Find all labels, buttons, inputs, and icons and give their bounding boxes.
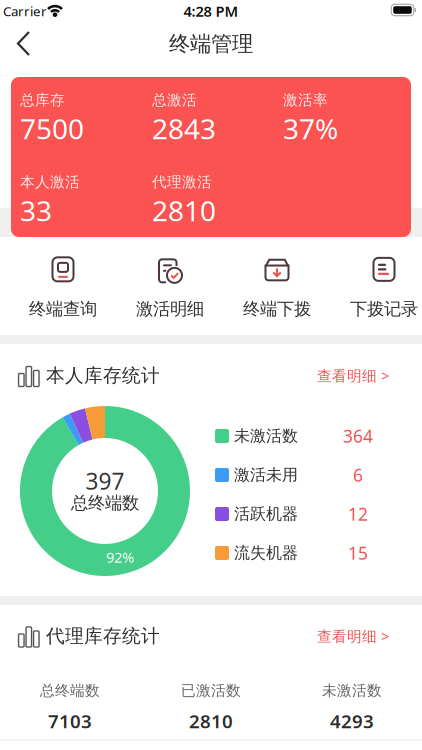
staticText: Carrier — [3, 2, 47, 20]
staticText: 未激活数 — [234, 426, 298, 446]
staticText: 总终端数 — [40, 682, 100, 700]
staticText: 总激活 — [152, 91, 197, 109]
staticText: 本人库存统计 — [46, 364, 160, 387]
staticText: 本人激活 — [20, 173, 80, 191]
staticText: 92% — [106, 547, 134, 567]
staticText: 2810 — [152, 192, 216, 229]
staticText: 代理激活 — [152, 173, 212, 191]
staticText: 总库存 — [20, 91, 65, 109]
staticText: 查看明细 > — [317, 366, 389, 385]
staticText: 激活明细 — [136, 298, 204, 320]
staticText: 2843 — [152, 110, 216, 147]
staticText: 33 — [20, 192, 52, 229]
staticText: 终端查询 — [29, 298, 97, 320]
staticText: 总终端数 — [71, 492, 139, 514]
staticText: 15 — [348, 541, 368, 564]
staticText: 12 — [348, 502, 368, 525]
staticText: 37% — [283, 110, 338, 147]
button[interactable]: 查看明细 > — [269, 366, 389, 385]
staticText: 流失机器 — [234, 543, 298, 563]
staticText: 7500 — [20, 110, 84, 147]
staticText: 4:28 PM — [183, 1, 238, 21]
staticText: 查看明细 > — [317, 626, 389, 646]
button[interactable]: 终端下拨 — [243, 254, 311, 320]
button[interactable]: 激活明细 — [136, 254, 204, 320]
button[interactable]: 终端查询 — [29, 254, 97, 320]
staticText: 终端下拨 — [243, 298, 311, 320]
staticText: 6 — [353, 463, 363, 486]
staticText: 7103 — [48, 709, 92, 733]
staticText: 激活率 — [283, 91, 328, 109]
staticText: 活跃机器 — [234, 504, 298, 524]
staticText: 终端管理 — [169, 31, 253, 57]
staticText: 364 — [343, 424, 373, 447]
staticText: 2810 — [189, 709, 233, 733]
staticText: 下拨记录 — [350, 298, 418, 320]
staticText: 4293 — [330, 709, 374, 733]
button[interactable]: 下拨记录 — [350, 254, 418, 320]
staticText: 未激活数 — [322, 682, 382, 700]
staticText: 代理库存统计 — [46, 624, 160, 647]
staticText: 397 — [85, 466, 124, 496]
button[interactable]: 查看明细 > — [269, 626, 389, 646]
staticText: 已激活数 — [181, 682, 241, 700]
staticText: 激活未用 — [234, 465, 298, 485]
button[interactable]: Back — [3, 26, 47, 61]
